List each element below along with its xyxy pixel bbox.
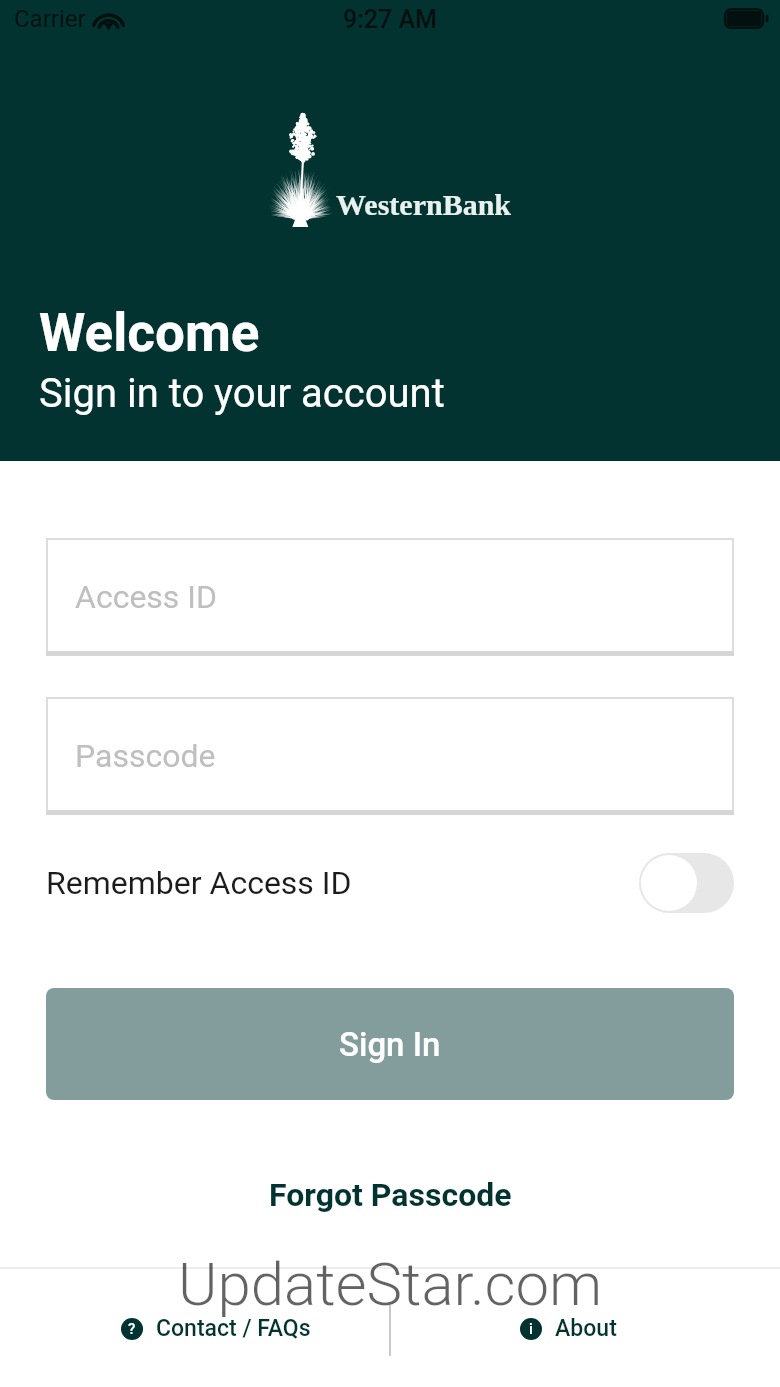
staticText: Remember Access ID (46, 864, 352, 902)
button[interactable]: Remember Access ID toggle (639, 853, 734, 913)
staticText: Forgot Passcode (269, 1176, 512, 1214)
staticText: UpdateStar.com (178, 1249, 603, 1319)
staticText: Sign in to your account (39, 370, 445, 417)
staticText: Passcode (75, 737, 216, 775)
staticText: Welcome (39, 302, 260, 364)
button[interactable]: Forgot Passcode (253, 1166, 528, 1224)
staticText: Contact / FAQs (156, 1315, 311, 1342)
button[interactable]: i (520, 1270, 617, 1387)
button[interactable]: Sign In (46, 988, 734, 1100)
staticText: Carrier (14, 5, 86, 33)
staticText: i (529, 1320, 533, 1338)
button[interactable]: Remember Access ID (46, 853, 734, 913)
staticText: 9:27 AM (343, 5, 438, 34)
staticText: WesternBank (336, 188, 512, 221)
staticText: ? (128, 1320, 136, 1338)
button[interactable]: Passcode (46, 697, 734, 815)
staticText: Access ID (75, 578, 218, 616)
button[interactable]: Access ID (46, 538, 734, 656)
button[interactable]: ? (121, 1270, 311, 1387)
staticText: About (555, 1315, 617, 1342)
staticText: Sign In (339, 1025, 441, 1064)
